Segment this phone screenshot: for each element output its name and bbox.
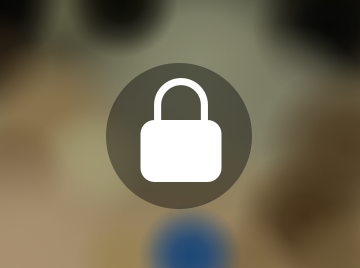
button[interactable]: Locked content	[0, 0, 360, 268]
